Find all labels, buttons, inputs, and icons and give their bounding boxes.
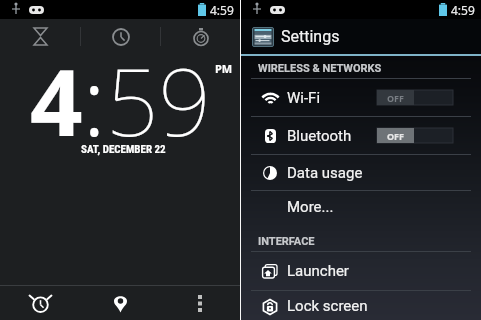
- button[interactable]: Settings: [241, 19, 481, 54]
- staticText: 4:59: [210, 2, 234, 18]
- button[interactable]: OFF: [377, 90, 453, 105]
- staticText: Data usage: [287, 164, 363, 182]
- button[interactable]: Bluetooth: [241, 117, 481, 154]
- button[interactable]: More options: [160, 286, 240, 320]
- staticText: INTERFACE: [258, 235, 315, 248]
- staticText: OFF: [387, 92, 405, 104]
- button[interactable]: Alarms: [0, 286, 80, 320]
- button[interactable]: More...: [241, 191, 481, 223]
- staticText: OFF: [387, 130, 405, 142]
- button[interactable]: Timer: [0, 19, 80, 54]
- staticText: :: [83, 38, 106, 163]
- staticText: 4:59: [451, 2, 475, 18]
- staticText: Settings: [281, 27, 340, 46]
- button[interactable]: Stopwatch: [161, 19, 240, 54]
- button[interactable]: OFF: [377, 128, 453, 143]
- button[interactable]: Data usage: [241, 155, 481, 190]
- staticText: 4: [30, 38, 83, 163]
- button[interactable]: Wi-Fi: [241, 79, 481, 116]
- staticText: 59: [106, 38, 211, 163]
- staticText: PM: [215, 61, 233, 76]
- staticText: Launcher: [287, 262, 349, 280]
- staticText: Bluetooth: [287, 127, 352, 145]
- staticText: SAT, DECEMBER 22: [81, 143, 166, 156]
- staticText: WIRELESS & NETWORKS: [258, 62, 382, 75]
- button[interactable]: Cities: [80, 286, 160, 320]
- button[interactable]: Lock screen: [241, 291, 481, 320]
- staticText: Wi-Fi: [287, 89, 321, 107]
- staticText: Lock screen: [287, 297, 368, 315]
- button[interactable]: Clock: [81, 19, 160, 54]
- button[interactable]: Launcher: [241, 252, 481, 290]
- staticText: More...: [287, 198, 334, 216]
